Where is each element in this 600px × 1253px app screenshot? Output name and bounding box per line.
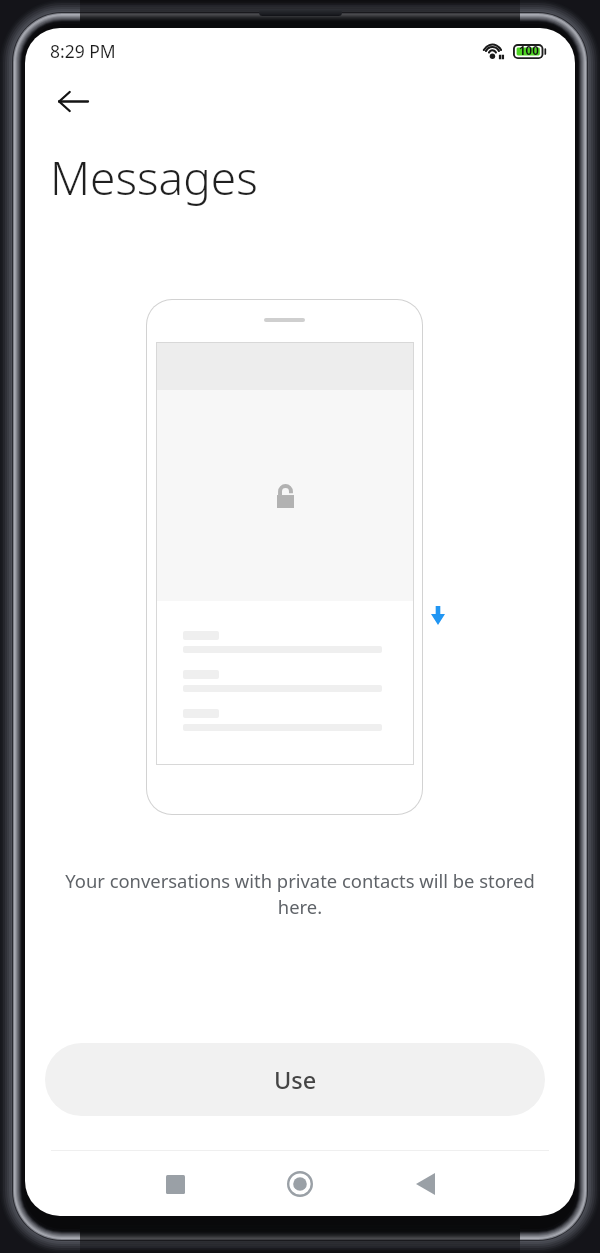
button[interactable]: Recent apps (125, 1156, 225, 1212)
staticText: 100 (519, 43, 539, 59)
button[interactable]: Home (250, 1156, 350, 1212)
staticText: Use (274, 1064, 317, 1096)
staticText: 8:29 PM (50, 39, 116, 63)
staticText: Your conversations with private contacts… (59, 868, 541, 920)
button[interactable]: Back (44, 74, 102, 128)
staticText: Messages (50, 146, 258, 209)
button[interactable]: Back (375, 1156, 475, 1212)
button[interactable]: Use (45, 1043, 545, 1116)
